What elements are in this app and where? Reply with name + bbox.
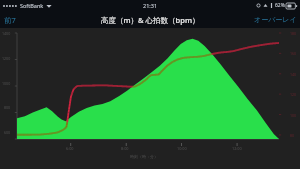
staticText: オーバーレイ (254, 15, 297, 24)
staticText: 1400 (2, 31, 11, 36)
staticText: SoftBank (20, 2, 44, 9)
staticText: 120 (290, 92, 297, 97)
staticText: 80 (290, 133, 295, 138)
staticText: 600 (4, 130, 11, 135)
staticText: 100 (290, 113, 297, 118)
staticText: 前7 (4, 15, 16, 25)
staticText: 時刻（時：分） (130, 154, 158, 159)
staticText: 160 (290, 51, 297, 56)
staticText: 12:00 (232, 146, 242, 151)
button[interactable]: オーバーレイ (246, 12, 300, 27)
staticText: 8:00 (121, 146, 129, 151)
staticText: 高度（m）& 心拍数（bpm） (101, 15, 200, 25)
staticText: 21:31 (143, 2, 158, 9)
staticText: 180 (290, 31, 297, 36)
button[interactable]: 前7 (0, 12, 24, 28)
staticText: 10:00 (177, 146, 187, 151)
staticText: 1000 (2, 81, 11, 86)
staticText: 1200 (2, 56, 11, 61)
staticText: 6:00 (66, 146, 74, 151)
staticText: 800 (4, 105, 11, 110)
staticText: 62% (275, 2, 285, 9)
staticText: 140 (290, 72, 297, 77)
